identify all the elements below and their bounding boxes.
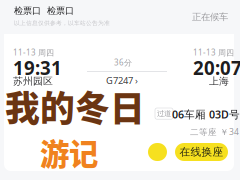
staticText: 我的冬日 bbox=[5, 81, 145, 131]
staticText: 在线换座 bbox=[179, 145, 223, 159]
staticText: 11-13 周四 bbox=[193, 47, 234, 58]
button[interactable]: 在线换座 bbox=[175, 143, 228, 161]
staticText: 检票口 检票口 bbox=[14, 5, 74, 16]
staticText: 上海 bbox=[209, 75, 229, 87]
staticText: 苏州园区 bbox=[13, 75, 53, 87]
staticText: 以上信息仅供参考，以车站公告为准 bbox=[14, 19, 110, 27]
staticText: 36分 bbox=[114, 57, 132, 68]
staticText: G7247 › bbox=[106, 74, 138, 87]
staticText: 游记 bbox=[40, 131, 98, 173]
staticText: 11-13 周四 bbox=[13, 47, 54, 58]
staticText: 正在候车 bbox=[192, 11, 228, 23]
staticText: 20:07 bbox=[193, 55, 240, 80]
staticText: 过道 bbox=[157, 109, 171, 118]
staticText: 06车厢 03D号 bbox=[172, 107, 240, 121]
staticText: 二等座 ￥34 bbox=[190, 126, 239, 138]
staticText: 19:31 bbox=[13, 55, 62, 80]
